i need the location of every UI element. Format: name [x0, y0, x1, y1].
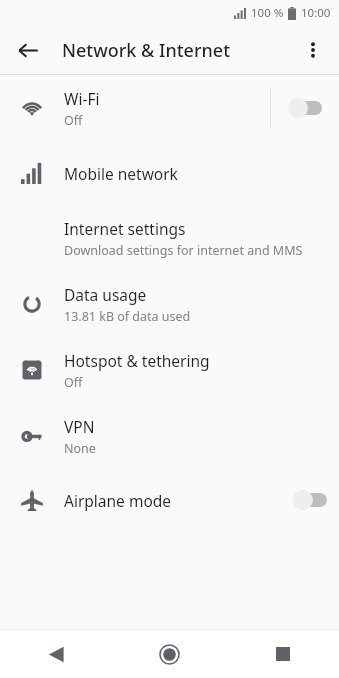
- button[interactable]: More options: [293, 30, 333, 70]
- button[interactable]: Internet settings: [0, 205, 339, 271]
- staticText: Airplane mode: [64, 490, 172, 511]
- staticText: Network & Internet: [62, 38, 231, 63]
- staticText: VPN: [64, 416, 95, 437]
- button[interactable]: Back: [8, 30, 48, 70]
- staticText: 13.81 kB of data used: [64, 308, 191, 325]
- staticText: Mobile network: [64, 163, 178, 184]
- button[interactable]: Wi-Fi: [0, 75, 339, 141]
- staticText: Wi-Fi: [64, 88, 100, 109]
- staticText: Off: [64, 374, 83, 391]
- button[interactable]: Wi-Fi toggle: [271, 84, 339, 132]
- button[interactable]: Data usage: [0, 271, 339, 337]
- button[interactable]: Airplane mode: [0, 469, 339, 531]
- staticText: Internet settings: [64, 218, 186, 239]
- staticText: 10:00: [301, 5, 331, 21]
- button[interactable]: Mobile network: [0, 141, 339, 205]
- button[interactable]: Recent apps: [226, 630, 339, 678]
- staticText: Off: [64, 112, 83, 129]
- button[interactable]: Home: [113, 630, 226, 678]
- button[interactable]: Airplane mode toggle: [281, 476, 339, 524]
- button[interactable]: Hotspot & tethering: [0, 337, 339, 403]
- button[interactable]: VPN: [0, 403, 339, 469]
- staticText: Hotspot & tethering: [64, 350, 210, 371]
- staticText: None: [64, 440, 96, 457]
- staticText: Data usage: [64, 284, 147, 305]
- staticText: 100 %: [251, 5, 284, 21]
- staticText: Download settings for internet and MMS: [64, 242, 303, 259]
- button[interactable]: Back: [0, 630, 113, 678]
